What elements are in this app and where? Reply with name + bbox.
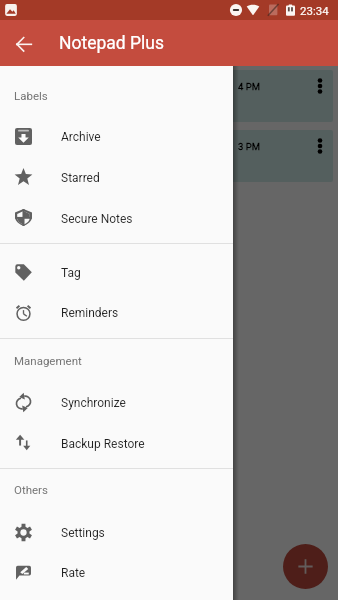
staticText: Secure Notes bbox=[61, 212, 133, 226]
button[interactable]: 3 PM bbox=[5, 130, 333, 182]
staticText: Synchronize bbox=[61, 396, 126, 410]
staticText: Management bbox=[14, 354, 82, 367]
staticText: Reminders bbox=[61, 306, 119, 320]
staticText: Rate bbox=[61, 566, 86, 580]
button[interactable]: Add note bbox=[283, 544, 328, 589]
staticText: Notepad Plus bbox=[59, 33, 164, 54]
button[interactable]: 4 PM bbox=[5, 70, 333, 122]
staticText: Archive bbox=[61, 130, 101, 144]
staticText: Backup Restore bbox=[61, 437, 145, 451]
button[interactable]: Secure Notes bbox=[0, 196, 233, 237]
button[interactable]: More options bbox=[310, 76, 330, 96]
staticText: 23:34 bbox=[300, 4, 329, 17]
staticText: 4 PM bbox=[238, 81, 260, 92]
button[interactable]: Rate bbox=[0, 551, 233, 591]
button[interactable]: Archive bbox=[0, 115, 233, 155]
staticText: Tag bbox=[61, 266, 81, 280]
staticText: Settings bbox=[61, 526, 105, 540]
button[interactable]: Reminders bbox=[0, 291, 233, 331]
button[interactable]: More options bbox=[310, 136, 330, 156]
staticText: 3 PM bbox=[238, 141, 260, 152]
button[interactable]: Back bbox=[8, 28, 39, 59]
button[interactable]: Starred bbox=[0, 155, 233, 196]
button[interactable]: Synchronize bbox=[0, 381, 233, 421]
button[interactable]: Tag bbox=[0, 251, 233, 291]
staticText: Others bbox=[14, 483, 48, 496]
staticText: Labels bbox=[14, 89, 48, 102]
button[interactable]: Settings bbox=[0, 511, 233, 551]
staticText: Starred bbox=[61, 171, 100, 185]
button[interactable]: Backup Restore bbox=[0, 421, 233, 462]
